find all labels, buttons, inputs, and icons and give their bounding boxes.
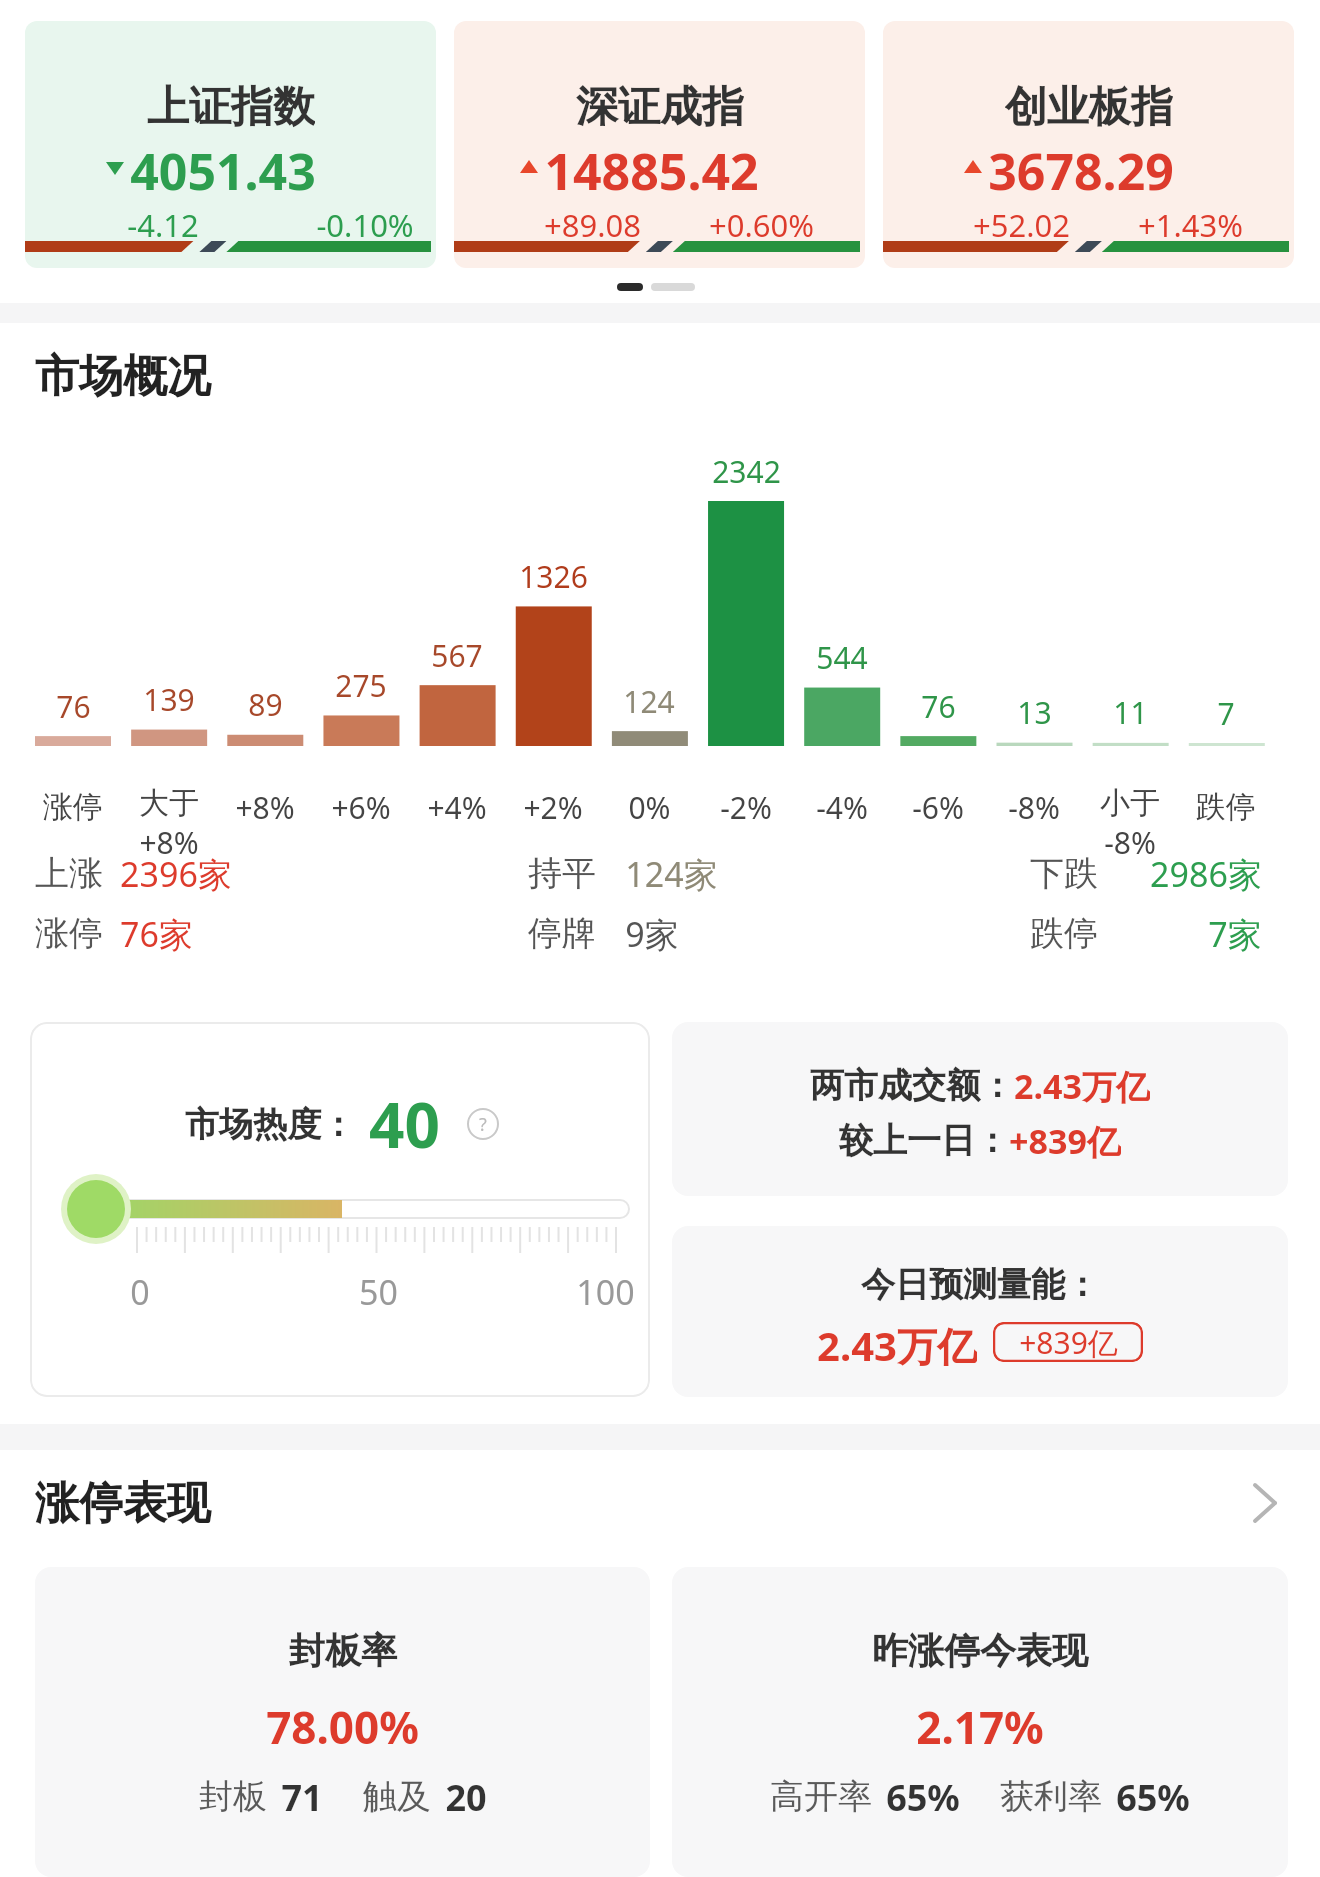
staticText: 持平 [528, 852, 596, 895]
staticText: +52.02 [973, 204, 1070, 246]
staticText: 跌停 [1030, 912, 1098, 955]
staticText: 65% [1116, 1773, 1190, 1819]
staticText: 14885.42 [544, 137, 759, 197]
staticText: 76 [921, 686, 956, 726]
staticText: 78.00% [266, 1697, 419, 1753]
staticText: +2% [523, 787, 583, 828]
staticText: -0.10% [316, 204, 414, 246]
staticText: -4.12 [127, 204, 199, 246]
staticText: 275 [335, 665, 387, 705]
staticText: 2986家 [1150, 851, 1262, 895]
staticText: +4% [427, 787, 487, 828]
button[interactable]: 深证成指 [454, 21, 865, 268]
staticText: 市场热度： [185, 1103, 355, 1146]
staticText: 触及 [363, 1775, 431, 1818]
staticText: 567 [431, 635, 483, 675]
staticText: +839亿 [1019, 1322, 1118, 1362]
staticText: 13 [1017, 692, 1052, 732]
staticText: 89 [248, 684, 283, 724]
staticText: 100 [576, 1269, 635, 1315]
staticText: 3678.29 [988, 137, 1174, 197]
staticText: 2.43万亿 [817, 1318, 977, 1366]
staticText: +0.60% [709, 204, 814, 246]
staticText: 较上一日： [839, 1119, 1009, 1162]
staticText: 0% [628, 787, 671, 828]
staticText: +6% [331, 787, 391, 828]
staticText: 40 [369, 1082, 440, 1166]
staticText: 跌停 [1196, 788, 1256, 826]
staticText: 71 [281, 1773, 323, 1819]
staticText: 封板率 [289, 1628, 397, 1673]
staticText: 高开率 [770, 1775, 872, 1818]
staticText: +1.43% [1138, 204, 1243, 246]
staticText: 544 [816, 637, 868, 677]
staticText: 今日预测量能： [861, 1263, 1099, 1306]
staticText: 20 [445, 1773, 487, 1819]
staticText: 50 [359, 1269, 398, 1315]
staticText: 深证成指 [576, 81, 744, 131]
staticText: 2342 [712, 451, 781, 491]
staticText: 9家 [625, 911, 679, 955]
staticText: 两市成交额： [810, 1064, 1014, 1107]
staticText: 139 [143, 679, 195, 719]
staticText: -4% [816, 787, 868, 828]
button[interactable]: 两市成交额： [672, 1022, 1288, 1196]
staticText: 11 [1113, 692, 1148, 732]
staticText: 76 [56, 686, 91, 726]
staticText: 创业板指 [1005, 81, 1173, 131]
staticText: 涨停 [43, 788, 103, 826]
button[interactable]: 涨停表现 [35, 1470, 1285, 1536]
staticText: 上证指数 [147, 81, 315, 131]
staticText: -2% [720, 787, 772, 828]
button[interactable]: 昨涨停今表现 [672, 1567, 1288, 1877]
staticText: 小于 -8% [1100, 784, 1160, 863]
staticText: 1326 [519, 556, 588, 596]
button[interactable]: 上证指数 [25, 21, 436, 268]
button[interactable]: 封板率 [35, 1567, 650, 1877]
staticText: 0 [130, 1269, 150, 1315]
staticText: 昨涨停今表现 [872, 1628, 1088, 1673]
button[interactable]: 今日预测量能： [672, 1226, 1288, 1397]
staticText: 获利率 [1000, 1775, 1102, 1818]
staticText: 124家 [625, 851, 718, 895]
staticText: 上涨 [35, 852, 103, 895]
staticText: +89.08 [544, 204, 641, 246]
staticText: -8% [1008, 787, 1060, 828]
staticText: +839亿 [1009, 1118, 1121, 1162]
staticText: 76家 [120, 911, 193, 955]
staticText: 大于 +8% [139, 784, 199, 863]
staticText: 2396家 [120, 851, 232, 895]
staticText: 2.43万亿 [1014, 1063, 1150, 1107]
staticText: 124 [623, 681, 675, 721]
staticText: 65% [886, 1773, 960, 1819]
staticText: 封板 [199, 1775, 267, 1818]
staticText: 涨停表现 [35, 1476, 211, 1531]
staticText: 下跌 [1030, 852, 1098, 895]
button[interactable]: 创业板指 [883, 21, 1294, 268]
staticText: 7 [1217, 693, 1235, 733]
staticText: +8% [235, 787, 295, 828]
staticText: 4051.43 [130, 137, 316, 197]
staticText: 停牌 [528, 912, 596, 955]
staticText: 7家 [1208, 911, 1262, 955]
staticText: ? [479, 1112, 487, 1136]
staticText: 涨停 [35, 912, 103, 955]
staticText: -6% [912, 787, 964, 828]
staticText: 2.17% [916, 1697, 1044, 1753]
button[interactable]: 市场热度： [30, 1022, 650, 1397]
staticText: 市场概况 [35, 349, 211, 404]
